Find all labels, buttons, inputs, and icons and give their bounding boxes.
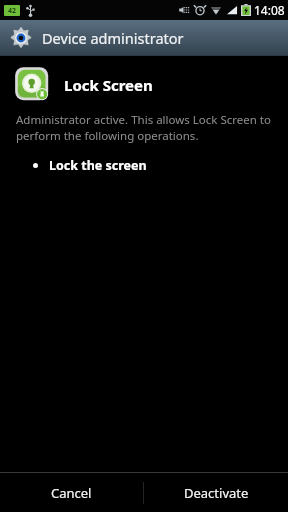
other: Settings — [10, 27, 32, 49]
staticText: Cancel — [51, 484, 92, 502]
staticText: Deactivate — [184, 484, 249, 502]
staticText: Device administrator — [42, 28, 184, 48]
staticText: Lock Screen — [64, 75, 153, 95]
button[interactable]: Deactivate — [144, 473, 288, 512]
staticText: Administrator active. This allows Lock S… — [16, 112, 274, 143]
staticText: 14:08 — [254, 2, 285, 18]
button[interactable]: Cancel — [0, 473, 143, 512]
staticText: Lock the screen — [49, 157, 147, 174]
staticText: 42 — [8, 6, 17, 16]
